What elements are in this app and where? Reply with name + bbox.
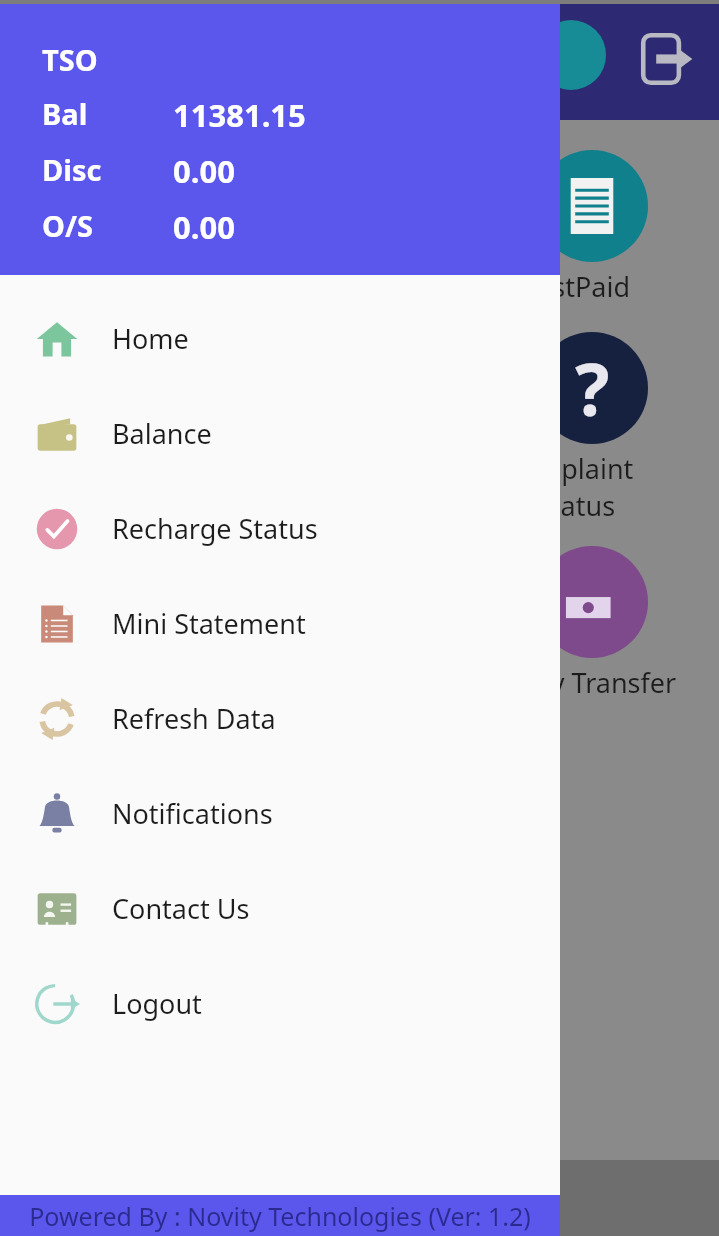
- button[interactable]: Contact Us: [0, 861, 560, 956]
- staticText: Balance: [112, 415, 212, 452]
- staticText: ostPaid: [536, 268, 631, 305]
- staticText: Recharge Status: [112, 510, 318, 547]
- button[interactable]: Notifications: [0, 766, 560, 861]
- staticText: Contact Us: [112, 890, 250, 927]
- button[interactable]: ostPaid: [536, 150, 648, 262]
- staticText: Refresh Data: [112, 700, 276, 737]
- staticText: Notifications: [112, 795, 273, 832]
- staticText: TSO: [42, 40, 98, 79]
- staticText: 0.00: [173, 206, 235, 248]
- staticText: Home: [112, 320, 189, 357]
- button[interactable]: Recharge Status: [0, 481, 560, 576]
- staticText: 0.00: [173, 150, 235, 192]
- staticText: ?: [575, 339, 610, 437]
- button[interactable]: Home: [0, 291, 560, 386]
- staticText: Mini Statement: [112, 605, 306, 642]
- button[interactable]: ey Transfer: [536, 546, 648, 658]
- staticText: 11381.15: [173, 94, 306, 136]
- button[interactable]: Logout: [636, 28, 698, 90]
- staticText: ey Transfer: [536, 664, 677, 701]
- staticText: Logout: [112, 985, 202, 1022]
- button[interactable]: Balance: [0, 386, 560, 481]
- staticText: Powered By : Novity Technologies (Ver: 1…: [29, 1199, 531, 1233]
- staticText: mplaint Status: [536, 450, 634, 524]
- button[interactable]: Logout: [0, 956, 560, 1051]
- staticText: Bal: [42, 94, 88, 133]
- button[interactable]: Profile: [536, 20, 606, 90]
- button[interactable]: Refresh Data: [0, 671, 560, 766]
- button[interactable]: Mini Statement: [0, 576, 560, 671]
- button[interactable]: mplaint Status: [536, 332, 648, 444]
- staticText: Disc: [42, 150, 102, 189]
- staticText: O/S: [42, 206, 93, 245]
